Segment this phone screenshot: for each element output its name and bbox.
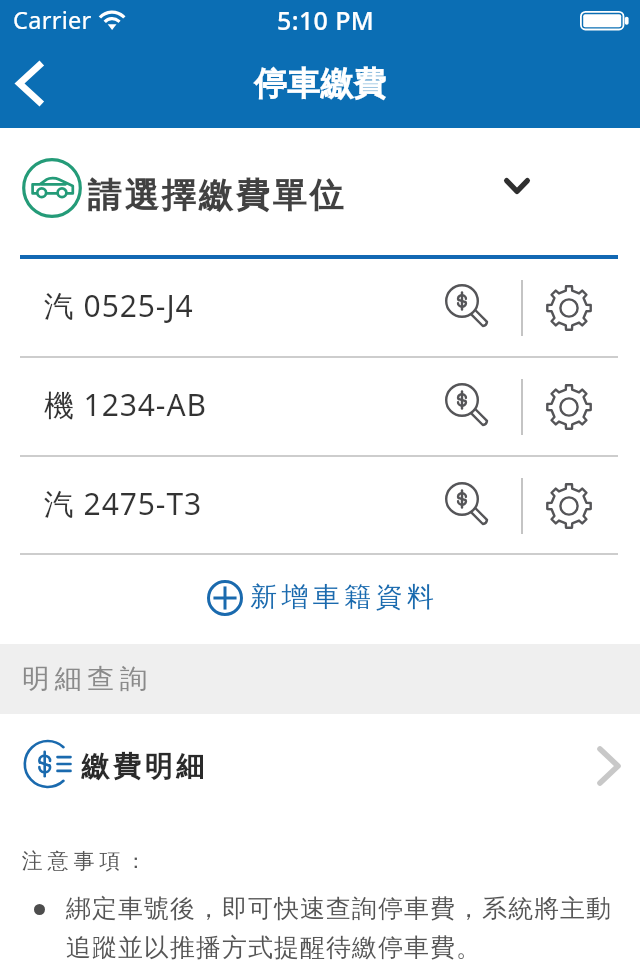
staticText: 明細查詢	[22, 662, 153, 696]
button[interactable]: 請選擇繳費單位	[0, 128, 640, 253]
button[interactable]: 新增車籍資料	[0, 555, 640, 644]
staticText: 新增車籍資料	[250, 580, 439, 614]
staticText: 汽 2475-T3	[44, 483, 203, 524]
staticText: 注意事項：	[19, 848, 149, 874]
staticText: 停車繳費	[254, 63, 386, 105]
staticText: 機 1234-AB	[44, 384, 207, 425]
staticText: Carrier	[13, 4, 92, 36]
staticText: 繳費明細	[81, 749, 208, 784]
button[interactable]: Settings	[530, 457, 612, 554]
button[interactable]: Settings	[530, 259, 612, 356]
staticText: 5:10 PM	[277, 3, 375, 37]
staticText: 汽 0525-J4	[44, 285, 194, 326]
button[interactable]: Query parking fee	[430, 457, 512, 554]
staticText: 綁定車號後，即可快速查詢停車費，系統將主動追蹤並以推播方式提醒待繳停車費。	[66, 893, 618, 960]
staticText: 請選擇繳費單位	[86, 174, 345, 217]
button[interactable]: 繳費明細	[0, 714, 640, 818]
button[interactable]: Query parking fee	[430, 358, 512, 455]
button[interactable]: Settings	[530, 358, 612, 455]
button[interactable]: Query parking fee	[430, 259, 512, 356]
button[interactable]: Back	[0, 40, 62, 128]
